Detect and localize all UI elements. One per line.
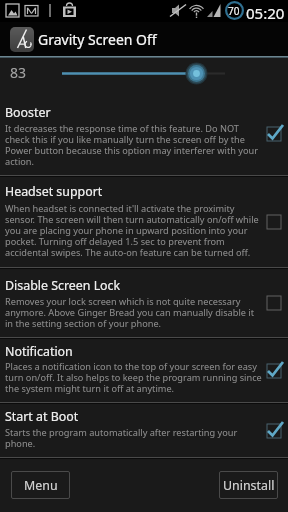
staticText: Start at Boot (5, 408, 79, 425)
button[interactable]: Booster (0, 92, 288, 175)
staticText: Disable Screen Lock (5, 277, 121, 294)
button[interactable]: Notification (0, 339, 288, 402)
staticText: Gravity Screen Off (38, 30, 157, 49)
button[interactable]: Sensitivity slider (0, 58, 288, 92)
button[interactable]: Headset support (0, 177, 288, 267)
button[interactable]: Option disabled (262, 292, 288, 314)
staticText: Uninstall (223, 477, 275, 494)
button[interactable]: Option enabled (262, 123, 288, 145)
staticText: 70 (228, 4, 240, 18)
button[interactable]: Uninstall (219, 471, 278, 499)
button[interactable]: Start at Boot (0, 404, 288, 457)
staticText: It decreases the response time of this f… (5, 122, 262, 167)
staticText: 05:20 (246, 3, 285, 23)
button[interactable]: Option enabled (262, 360, 288, 382)
button[interactable]: Option disabled (262, 211, 288, 233)
button[interactable]: Option enabled (262, 420, 288, 442)
staticText: Starts the program automatically after r… (5, 426, 262, 449)
staticText: Removes your lock screen which is not qu… (5, 295, 262, 329)
button[interactable]: Disable Screen Lock (0, 269, 288, 337)
staticText: Booster (5, 104, 51, 121)
staticText: 83 (10, 63, 27, 82)
staticText: When headset is connected it'll activate… (5, 202, 262, 258)
staticText: Headset support (5, 183, 103, 200)
button[interactable]: Menu (11, 471, 70, 499)
staticText: Menu (24, 477, 58, 494)
staticText: Notification (5, 343, 73, 360)
staticText: Places a notification icon to the top of… (5, 360, 262, 394)
